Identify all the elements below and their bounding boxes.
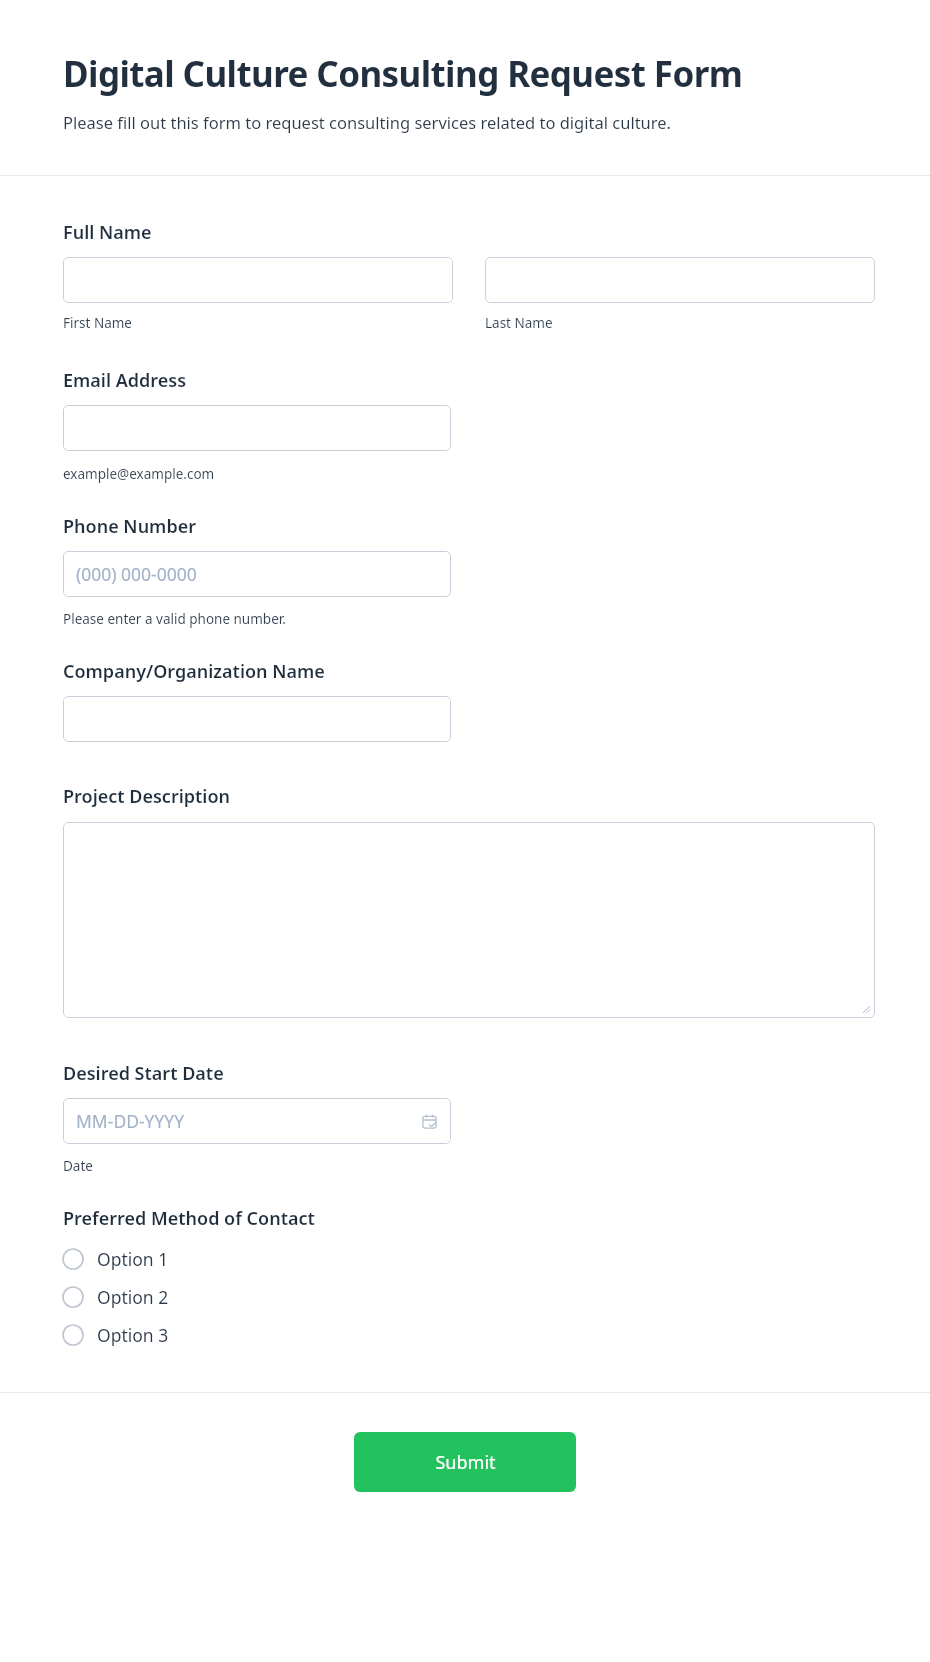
button[interactable] bbox=[63, 257, 453, 303]
staticText: Email Address bbox=[63, 368, 187, 393]
staticText: Company/Organization Name bbox=[63, 659, 325, 684]
button[interactable] bbox=[485, 257, 875, 303]
staticText: Date bbox=[63, 1157, 93, 1175]
staticText: Phone Number bbox=[63, 514, 197, 539]
staticText: MM-DD-YYYY bbox=[76, 1109, 185, 1133]
staticText: Project Description bbox=[63, 784, 231, 809]
staticText: Full Name bbox=[63, 220, 152, 245]
button[interactable]: MM-DD-YYYY bbox=[63, 1098, 451, 1144]
staticText: Please fill out this form to request con… bbox=[63, 111, 672, 133]
staticText: Please enter a valid phone number. bbox=[63, 610, 286, 628]
staticText: Submit bbox=[435, 1450, 496, 1475]
button[interactable] bbox=[63, 822, 875, 1018]
button[interactable] bbox=[63, 696, 451, 742]
button[interactable] bbox=[63, 405, 451, 451]
staticText: Last Name bbox=[485, 314, 553, 332]
staticText: example@example.com bbox=[63, 465, 215, 483]
staticText: Option 2 bbox=[97, 1285, 169, 1309]
button[interactable]: Submit bbox=[354, 1432, 576, 1492]
staticText: Digital Culture Consulting Request Form bbox=[63, 50, 743, 98]
button[interactable]: (000) 000-0000 bbox=[63, 551, 451, 597]
staticText: Preferred Method of Contact bbox=[63, 1206, 315, 1231]
other: Open date picker bbox=[422, 1114, 437, 1129]
staticText: (000) 000-0000 bbox=[76, 562, 197, 586]
button[interactable]: Option 2 bbox=[0, 1278, 930, 1316]
button[interactable]: Option 3 bbox=[0, 1316, 930, 1354]
button[interactable]: Option 1 bbox=[0, 1240, 930, 1278]
staticText: Option 1 bbox=[97, 1247, 169, 1271]
staticText: First Name bbox=[63, 314, 132, 332]
staticText: Option 3 bbox=[97, 1323, 169, 1347]
staticText: Desired Start Date bbox=[63, 1061, 224, 1086]
